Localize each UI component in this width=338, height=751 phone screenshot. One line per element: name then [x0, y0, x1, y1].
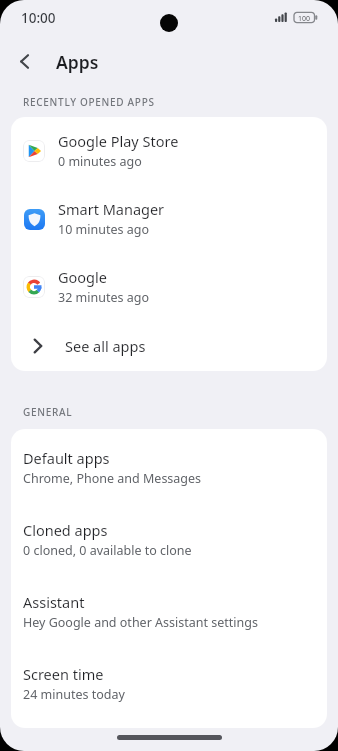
staticText: 10:00 [21, 9, 56, 27]
button[interactable]: See all apps [11, 321, 327, 371]
staticText: RECENTLY OPENED APPS [23, 95, 155, 109]
staticText: Smart Manager [58, 199, 165, 219]
staticText: Apps [56, 50, 99, 74]
staticText: Hey Google and other Assistant settings [23, 614, 258, 631]
staticText: Cloned apps [23, 520, 108, 540]
staticText: 100 [298, 14, 311, 24]
staticText: 24 minutes today [23, 686, 125, 703]
staticText: See all apps [65, 336, 146, 356]
staticText: 0 cloned, 0 available to clone [23, 542, 192, 559]
staticText: 32 minutes ago [58, 289, 149, 306]
button[interactable]: Screen time [11, 645, 327, 717]
staticText: 0 minutes ago [58, 153, 142, 170]
button[interactable] [12, 50, 36, 74]
staticText: Google [58, 267, 107, 287]
button[interactable]: Google [11, 253, 327, 321]
button[interactable]: Cloned apps [11, 501, 327, 573]
staticText: Assistant [23, 592, 85, 612]
staticText: GENERAL [23, 405, 73, 419]
button[interactable]: Smart Manager [11, 185, 327, 253]
staticText: Screen time [23, 664, 104, 684]
staticText: Chrome, Phone and Messages [23, 470, 202, 487]
button[interactable]: Assistant [11, 573, 327, 645]
staticText: 10 minutes ago [58, 221, 149, 238]
button[interactable]: Default apps [11, 429, 327, 501]
staticText: Google Play Store [58, 131, 179, 151]
button[interactable]: Google Play Store [11, 117, 327, 185]
staticText: Default apps [23, 448, 110, 468]
